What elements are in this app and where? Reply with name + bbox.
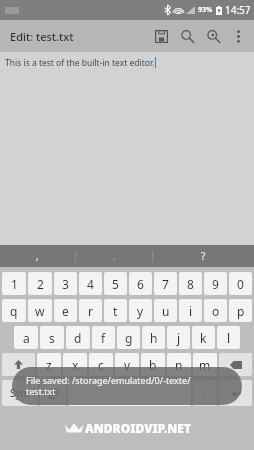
staticText: x bbox=[72, 357, 79, 373]
button[interactable]: k bbox=[192, 326, 215, 349]
button[interactable]: Find next bbox=[200, 23, 226, 49]
staticText: j bbox=[177, 330, 181, 346]
button[interactable]: Save bbox=[148, 23, 174, 49]
staticText: h bbox=[150, 330, 158, 346]
button[interactable]: j bbox=[167, 326, 190, 349]
button[interactable]: c bbox=[89, 353, 113, 376]
staticText: s bbox=[49, 330, 55, 346]
staticText: Edit: test.txt bbox=[10, 29, 74, 44]
staticText: 2 bbox=[37, 276, 44, 292]
staticText: r bbox=[88, 303, 93, 319]
staticText: q bbox=[10, 303, 18, 319]
button[interactable]: Enter bbox=[219, 380, 252, 406]
staticText: 7 bbox=[162, 276, 169, 292]
button[interactable]: . bbox=[193, 380, 217, 406]
staticText: ANDROIDVIP.NET bbox=[85, 420, 191, 436]
staticText: a bbox=[23, 330, 30, 346]
button[interactable]: ? bbox=[153, 245, 254, 267]
button[interactable]: n bbox=[167, 353, 191, 376]
button[interactable]: g bbox=[117, 326, 140, 349]
staticText: 14:57 bbox=[225, 3, 251, 17]
button[interactable]: 7 bbox=[154, 272, 177, 295]
button[interactable]: u bbox=[154, 299, 177, 322]
staticText: z bbox=[46, 357, 52, 373]
staticText: l bbox=[227, 330, 231, 346]
button[interactable]: b bbox=[141, 353, 165, 376]
staticText: g bbox=[125, 330, 133, 346]
button[interactable]: 1 bbox=[2, 272, 26, 295]
button[interactable]: x bbox=[63, 353, 87, 376]
button[interactable]: z bbox=[37, 353, 61, 376]
button[interactable]: 0 bbox=[229, 272, 252, 295]
button[interactable]: 5 bbox=[104, 272, 127, 295]
button[interactable]: 8 bbox=[179, 272, 202, 295]
staticText: . bbox=[113, 249, 116, 263]
button[interactable]: 3 bbox=[54, 272, 77, 295]
button[interactable]: q bbox=[2, 299, 26, 322]
button[interactable]: Search bbox=[174, 23, 200, 49]
button[interactable]: Backspace bbox=[219, 353, 252, 376]
staticText: 1 bbox=[11, 276, 18, 292]
button[interactable]: 9 bbox=[204, 272, 227, 295]
button[interactable]: i bbox=[179, 299, 202, 322]
staticText: 93% bbox=[198, 5, 213, 15]
staticText: v bbox=[124, 357, 131, 373]
button[interactable]: Shift bbox=[2, 353, 35, 376]
button[interactable]: o bbox=[204, 299, 227, 322]
staticText: File saved: /storage/emulated/0/-texte/ … bbox=[26, 374, 191, 398]
button[interactable]: 2 bbox=[28, 272, 52, 295]
button[interactable]: m bbox=[193, 353, 217, 376]
staticText: k bbox=[200, 330, 207, 346]
staticText: e bbox=[62, 303, 69, 319]
staticText: f bbox=[101, 330, 106, 346]
staticText: 6 bbox=[137, 276, 144, 292]
button[interactable]: l bbox=[217, 326, 240, 349]
staticText: 0 bbox=[237, 276, 244, 292]
button[interactable]: 6 bbox=[129, 272, 152, 295]
staticText: p bbox=[237, 303, 245, 319]
button[interactable]: t bbox=[104, 299, 127, 322]
staticText: o bbox=[212, 303, 220, 319]
button[interactable]: Sym bbox=[2, 380, 38, 406]
button[interactable]: r bbox=[79, 299, 102, 322]
staticText: . bbox=[203, 385, 207, 401]
staticText: d bbox=[74, 330, 82, 346]
button[interactable]: @ bbox=[40, 380, 66, 406]
button[interactable]: a bbox=[14, 326, 38, 349]
button[interactable]: d bbox=[66, 326, 90, 349]
staticText: t bbox=[113, 303, 118, 319]
staticText: 8 bbox=[187, 276, 194, 292]
staticText: 3 bbox=[62, 276, 69, 292]
button[interactable]: p bbox=[229, 299, 252, 322]
staticText: 5 bbox=[112, 276, 119, 292]
button[interactable]: v bbox=[115, 353, 139, 376]
staticText: Sym bbox=[10, 386, 30, 400]
staticText: i bbox=[189, 303, 193, 319]
staticText: c bbox=[98, 357, 104, 373]
button[interactable]: , bbox=[0, 245, 75, 267]
staticText: 9 bbox=[212, 276, 219, 292]
button[interactable]: f bbox=[92, 326, 115, 349]
staticText: , bbox=[36, 249, 39, 263]
staticText: w bbox=[35, 303, 45, 319]
staticText: n bbox=[175, 357, 183, 373]
staticText: ? bbox=[201, 249, 206, 263]
staticText: y bbox=[137, 303, 144, 319]
button[interactable]: s bbox=[40, 326, 64, 349]
staticText: b bbox=[149, 357, 157, 373]
button[interactable]: More options bbox=[226, 24, 250, 48]
button[interactable]: 4 bbox=[79, 272, 102, 295]
staticText: 4 bbox=[87, 276, 94, 292]
staticText: @ bbox=[48, 385, 59, 401]
button[interactable]: w bbox=[28, 299, 52, 322]
button[interactable]: h bbox=[142, 326, 165, 349]
staticText: m bbox=[199, 357, 211, 373]
button[interactable] bbox=[68, 380, 191, 406]
staticText: u bbox=[162, 303, 170, 319]
button[interactable]: y bbox=[129, 299, 152, 322]
staticText: This is a test of the built-in text edit… bbox=[5, 57, 155, 69]
button[interactable]: e bbox=[54, 299, 77, 322]
